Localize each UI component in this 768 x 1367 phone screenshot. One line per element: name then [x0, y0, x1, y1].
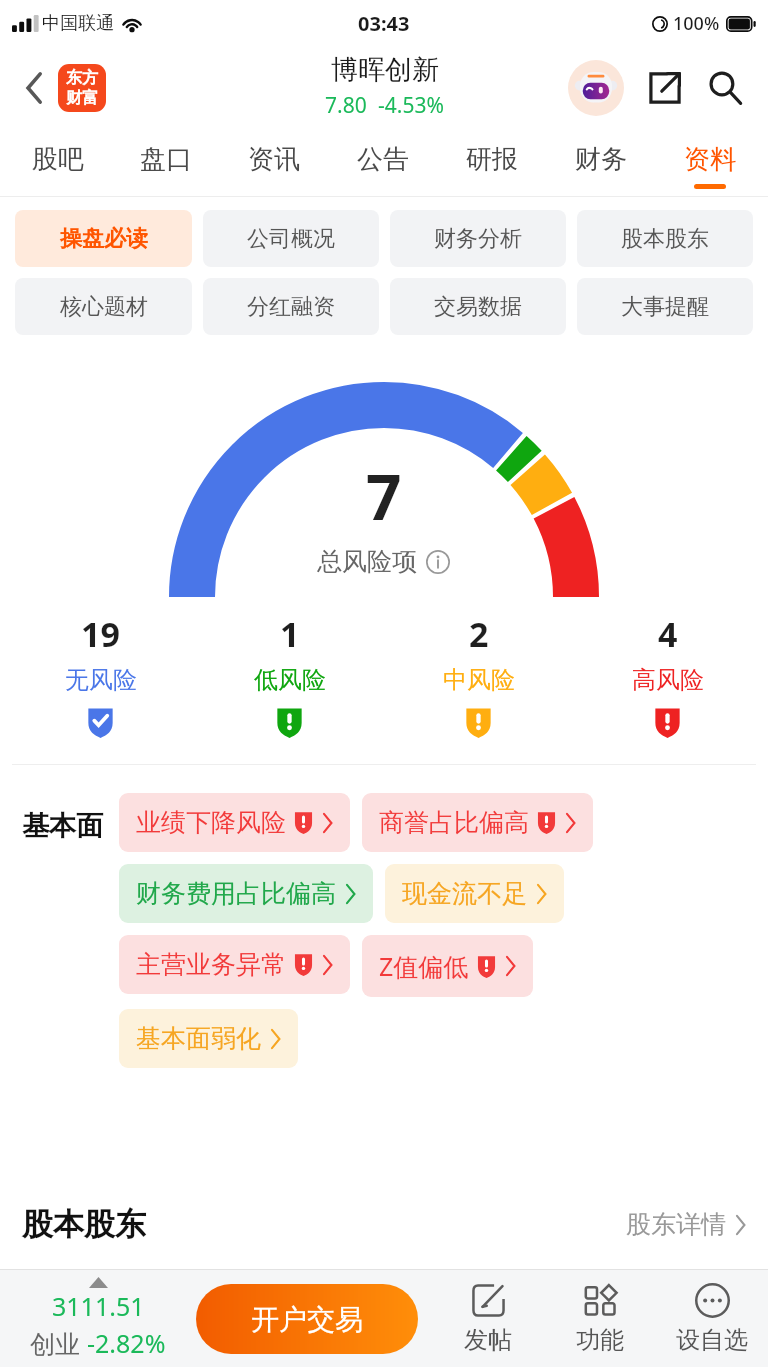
button[interactable]: Share	[642, 65, 688, 111]
staticText: 4	[658, 611, 678, 657]
staticText: 发帖	[464, 1325, 512, 1355]
button[interactable]: 发帖	[432, 1270, 544, 1367]
staticText: 基本面	[22, 809, 103, 843]
button[interactable]: Search	[702, 65, 748, 111]
staticText: Z值偏低	[379, 949, 469, 983]
staticText: 资讯	[248, 143, 300, 176]
button[interactable]: 资讯	[220, 130, 328, 196]
button[interactable]: 1	[195, 611, 384, 738]
staticText: 业绩下降风险	[136, 807, 286, 838]
staticText: 分红融资	[247, 293, 335, 321]
staticText: 财务	[575, 143, 627, 176]
button[interactable]: 基本面弱化	[119, 1009, 298, 1068]
staticText: 7	[366, 454, 402, 538]
staticText: 研报	[466, 143, 518, 176]
button[interactable]: Back	[12, 66, 56, 110]
button[interactable]: 现金流不足	[385, 864, 564, 923]
staticText: 3111.51	[52, 1289, 145, 1323]
button[interactable]: 3111.51	[0, 1277, 196, 1360]
staticText: 核心题材	[60, 293, 148, 321]
staticText: 总风险项	[317, 546, 417, 577]
button[interactable]: 设自选	[656, 1270, 768, 1367]
staticText: 2	[469, 611, 489, 657]
staticText: 财务分析	[434, 225, 522, 253]
button[interactable]: 财务	[546, 130, 655, 196]
staticText: 东方	[66, 68, 98, 88]
button[interactable]: 主营业务异常	[119, 935, 350, 994]
button[interactable]: 盘口	[112, 130, 220, 196]
button[interactable]: Z值偏低	[362, 935, 533, 997]
staticText: 股本股东	[621, 225, 709, 253]
button[interactable]: 商誉占比偏高	[362, 793, 593, 852]
staticText: 股吧	[32, 143, 84, 176]
staticText: 财务费用占比偏高	[136, 878, 336, 909]
staticText: 设自选	[676, 1325, 748, 1355]
staticText: 无风险	[65, 665, 137, 695]
button[interactable]: 股吧	[4, 130, 112, 196]
button[interactable]: 研报	[437, 130, 546, 196]
button[interactable]: 大事提醒	[577, 278, 753, 335]
staticText: 功能	[576, 1325, 624, 1355]
staticText: 基本面弱化	[136, 1023, 261, 1054]
staticText: 博晖创新	[331, 53, 439, 87]
staticText: 创业	[30, 1326, 87, 1360]
staticText: 中风险	[443, 665, 515, 695]
staticText: 操盘必读	[60, 225, 148, 253]
staticText: 公司概况	[247, 225, 335, 253]
staticText: 商誉占比偏高	[379, 807, 529, 838]
staticText: 现金流不足	[402, 878, 527, 909]
staticText: 1	[280, 611, 300, 657]
button[interactable]: 4	[573, 611, 762, 738]
staticText: 公告	[357, 143, 409, 176]
staticText: 盘口	[140, 143, 192, 176]
button[interactable]: 公司概况	[203, 210, 379, 267]
button[interactable]: 开户交易	[196, 1284, 418, 1354]
staticText: 7.80	[325, 91, 367, 120]
button[interactable]: 核心题材	[15, 278, 192, 335]
button[interactable]: 财务分析	[390, 210, 566, 267]
button[interactable]: 交易数据	[390, 278, 566, 335]
staticText: 大事提醒	[621, 293, 709, 321]
staticText: 低风险	[254, 665, 326, 695]
button[interactable]: 业绩下降风险	[119, 793, 350, 852]
staticText: 财富	[66, 88, 98, 108]
button[interactable]: 2	[384, 611, 573, 738]
staticText: -4.53%	[378, 91, 444, 120]
staticText: 股东详情	[626, 1209, 726, 1240]
button[interactable]: 19	[6, 611, 195, 738]
staticText: 交易数据	[434, 293, 522, 321]
button[interactable]: 操盘必读	[15, 210, 192, 267]
button[interactable]: 公告	[328, 130, 437, 196]
button[interactable]: 功能	[544, 1270, 656, 1367]
staticText: 主营业务异常	[136, 949, 286, 980]
staticText: 03:43	[358, 10, 410, 37]
button[interactable]: AI assistant	[568, 60, 624, 116]
staticText: 高风险	[632, 665, 704, 695]
staticText: 100%	[673, 11, 720, 36]
staticText: -2.82%	[87, 1326, 166, 1360]
button[interactable]: 资料	[655, 130, 764, 196]
staticText: 股本股东	[22, 1205, 146, 1244]
staticText: 开户交易	[251, 1302, 363, 1337]
staticText: 19	[81, 611, 120, 657]
staticText: 中国联通	[42, 12, 114, 35]
button[interactable]: 股东详情	[626, 1209, 746, 1240]
button[interactable]: 东方财富	[58, 64, 106, 112]
button[interactable]: 分红融资	[203, 278, 379, 335]
button[interactable]: 财务费用占比偏高	[119, 864, 373, 923]
staticText: 资料	[684, 143, 736, 176]
button[interactable]: Info	[425, 549, 451, 575]
button[interactable]: 股本股东	[577, 210, 753, 267]
